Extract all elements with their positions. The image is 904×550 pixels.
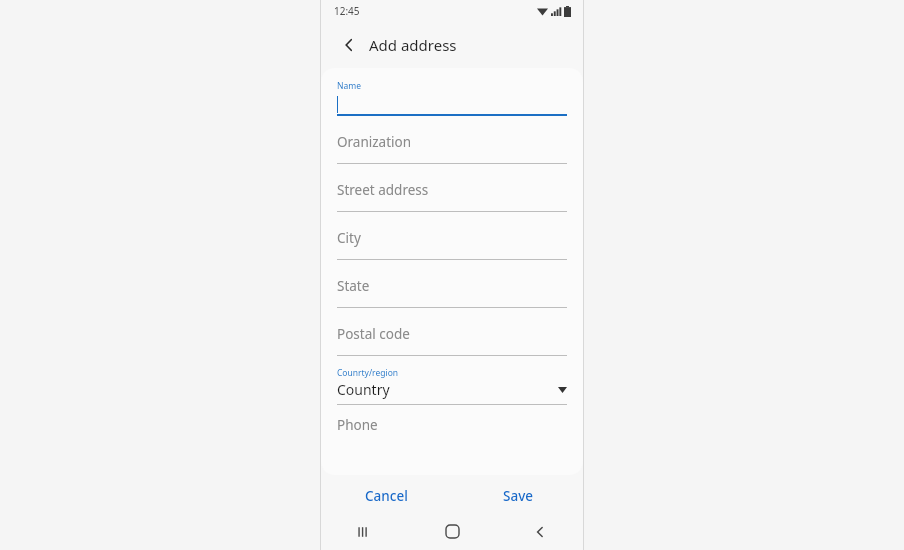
button[interactable]: Counrty/region	[337, 356, 567, 405]
staticText: Save	[503, 487, 534, 505]
button[interactable]: State	[337, 260, 567, 308]
button[interactable]: Name	[337, 80, 567, 116]
button[interactable]: Back	[496, 513, 584, 550]
staticText: State	[337, 277, 370, 295]
staticText: Street address	[337, 181, 429, 199]
button[interactable]: Home	[408, 513, 496, 550]
staticText: Counrty/region	[337, 367, 399, 379]
staticText: Country	[337, 380, 390, 399]
button[interactable]: Oranization	[337, 116, 567, 164]
button[interactable]: City	[337, 212, 567, 260]
staticText: 12:45	[334, 4, 360, 18]
staticText: Add address	[369, 35, 457, 55]
staticText: Phone	[337, 416, 378, 434]
button[interactable]: Postal code	[337, 308, 567, 356]
staticText: City	[337, 229, 361, 247]
button[interactable]: Recents	[320, 513, 408, 550]
button[interactable]: Street address	[337, 164, 567, 212]
staticText: Oranization	[337, 133, 412, 151]
staticText: Postal code	[337, 325, 410, 343]
button[interactable]: Back	[334, 30, 364, 60]
button[interactable]: Cancel	[320, 479, 452, 513]
button[interactable]: Save	[452, 479, 584, 513]
staticText: Name	[337, 80, 361, 92]
staticText: Cancel	[365, 487, 408, 505]
